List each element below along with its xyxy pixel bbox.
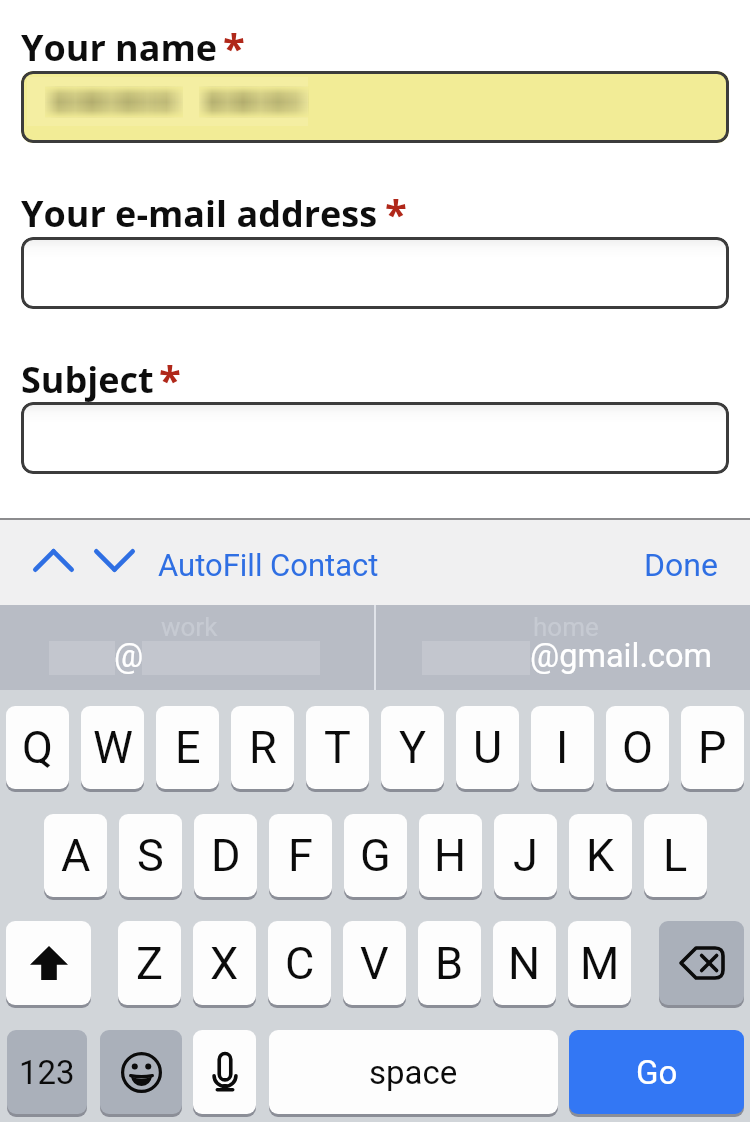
button[interactable]: Dictation bbox=[193, 1030, 256, 1114]
button[interactable]: C bbox=[268, 921, 331, 1005]
staticText: A bbox=[61, 829, 91, 882]
staticText: Q bbox=[22, 721, 53, 774]
button[interactable]: G bbox=[344, 814, 407, 897]
staticText: S bbox=[137, 829, 164, 882]
staticText: E bbox=[175, 721, 201, 774]
button[interactable]: I bbox=[531, 706, 594, 789]
button[interactable]: B bbox=[418, 921, 481, 1005]
staticText: * bbox=[223, 20, 245, 74]
button[interactable]: Y bbox=[381, 706, 444, 789]
button[interactable]: space bbox=[269, 1030, 558, 1114]
button[interactable] bbox=[21, 71, 729, 143]
button[interactable]: H bbox=[419, 814, 482, 897]
staticText: K bbox=[586, 829, 615, 882]
staticText: @ bbox=[114, 637, 144, 675]
button[interactable]: Go bbox=[569, 1030, 744, 1114]
button[interactable]: Backspace bbox=[659, 921, 744, 1005]
staticText: Done bbox=[644, 546, 718, 584]
button[interactable]: O bbox=[606, 706, 669, 789]
button[interactable]: Previous field bbox=[21, 518, 85, 603]
button[interactable] bbox=[21, 237, 729, 309]
button[interactable]: Next field bbox=[82, 518, 146, 603]
button[interactable]: Shift bbox=[6, 921, 91, 1005]
staticText: N bbox=[508, 937, 541, 990]
button[interactable]: L bbox=[644, 814, 707, 897]
staticText: H bbox=[434, 829, 467, 882]
staticText: * bbox=[159, 352, 181, 406]
button[interactable]: J bbox=[494, 814, 557, 897]
staticText: U bbox=[473, 721, 503, 774]
staticText: home bbox=[533, 612, 599, 642]
staticText: W bbox=[93, 721, 133, 774]
staticText: F bbox=[288, 829, 313, 882]
button[interactable]: X bbox=[193, 921, 256, 1005]
button[interactable]: Q bbox=[6, 706, 69, 789]
button[interactable]: F bbox=[269, 814, 332, 897]
staticText: Z bbox=[136, 937, 163, 990]
staticText: J bbox=[513, 829, 538, 882]
staticText: AutoFill Contact bbox=[158, 547, 379, 583]
button[interactable]: M bbox=[568, 921, 631, 1005]
staticText: B bbox=[435, 937, 464, 990]
button[interactable]: Z bbox=[118, 921, 181, 1005]
button[interactable]: S bbox=[119, 814, 182, 897]
staticText: @gmail.com bbox=[530, 637, 713, 675]
staticText: D bbox=[211, 829, 241, 882]
staticText: L bbox=[663, 829, 688, 882]
button[interactable]: P bbox=[681, 706, 744, 789]
button[interactable]: T bbox=[306, 706, 369, 789]
button[interactable]: K bbox=[569, 814, 632, 897]
staticText: R bbox=[249, 721, 277, 774]
button[interactable]: V bbox=[343, 921, 406, 1005]
staticText: T bbox=[324, 721, 351, 774]
staticText: work bbox=[161, 612, 218, 642]
button[interactable]: U bbox=[456, 706, 519, 789]
button[interactable]: E bbox=[156, 706, 219, 789]
button[interactable]: AutoFill Contact bbox=[158, 520, 379, 605]
staticText: Your e-mail address bbox=[21, 189, 378, 238]
button[interactable]: D bbox=[194, 814, 257, 897]
staticText: M bbox=[580, 937, 620, 990]
staticText: space bbox=[369, 1053, 458, 1092]
staticText: O bbox=[622, 721, 653, 774]
button[interactable]: R bbox=[231, 706, 294, 789]
button[interactable]: Emoji bbox=[100, 1030, 182, 1114]
staticText: Your name bbox=[21, 23, 218, 72]
button[interactable]: N bbox=[493, 921, 556, 1005]
staticText: * bbox=[385, 186, 407, 240]
button[interactable]: work bbox=[0, 605, 375, 690]
button[interactable]: Done bbox=[644, 520, 718, 605]
staticText: 123 bbox=[19, 1053, 75, 1092]
staticText: C bbox=[285, 937, 315, 990]
staticText: Go bbox=[636, 1053, 678, 1092]
staticText: Subject bbox=[21, 355, 154, 404]
staticText: Y bbox=[399, 721, 427, 774]
staticText: P bbox=[698, 721, 727, 774]
button[interactable]: A bbox=[44, 814, 107, 897]
button[interactable] bbox=[21, 402, 729, 474]
button[interactable]: home bbox=[376, 605, 750, 690]
staticText: G bbox=[360, 829, 391, 882]
button[interactable]: 123 bbox=[7, 1030, 87, 1114]
staticText: I bbox=[556, 721, 569, 774]
staticText: X bbox=[210, 937, 239, 990]
button[interactable]: W bbox=[81, 706, 144, 789]
staticText: V bbox=[360, 937, 389, 990]
